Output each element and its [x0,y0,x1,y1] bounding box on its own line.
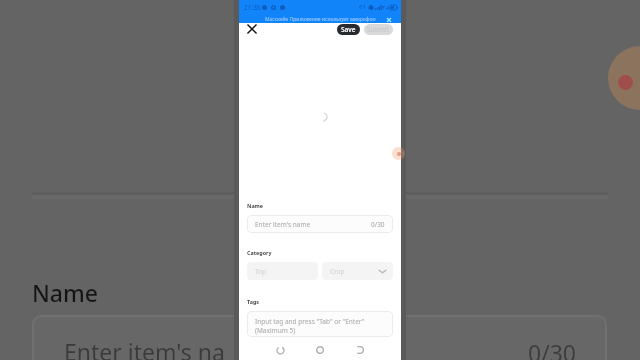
staticText: Tags [247,298,260,305]
staticText: Crop [330,267,345,276]
staticText: Enter item's na [64,336,225,360]
button[interactable]: Save [337,24,360,35]
staticText: 0/30 [528,337,577,360]
button[interactable]: Recents [352,342,368,358]
staticText: Enter item's name [255,220,311,229]
staticText: Name [32,277,98,308]
staticText: Category [247,249,272,256]
button[interactable]: Back [272,342,288,358]
staticText: Input tag and press "Tab" or "Enter" (Ma… [255,317,365,335]
staticText: Top [255,267,267,276]
button[interactable]: Submit [364,24,393,35]
staticText: Масскейк Приложение использует микрофон [265,16,376,23]
staticText: Submit [367,25,390,34]
staticText: Save [341,25,356,34]
button[interactable]: Close [244,21,259,36]
staticText: 21:35 [244,3,261,12]
button[interactable]: Top [247,262,318,280]
button[interactable]: Input tag and press "Tab" or "Enter" (Ma… [247,311,393,337]
button[interactable]: Crop [322,262,393,280]
button[interactable]: Close banner [385,16,393,24]
staticText: 61 [359,3,366,11]
button[interactable]: Home [312,342,328,358]
staticText: Name [247,202,264,209]
staticText: 0/30 [371,220,385,229]
button[interactable]: Enter item's name [247,215,393,233]
